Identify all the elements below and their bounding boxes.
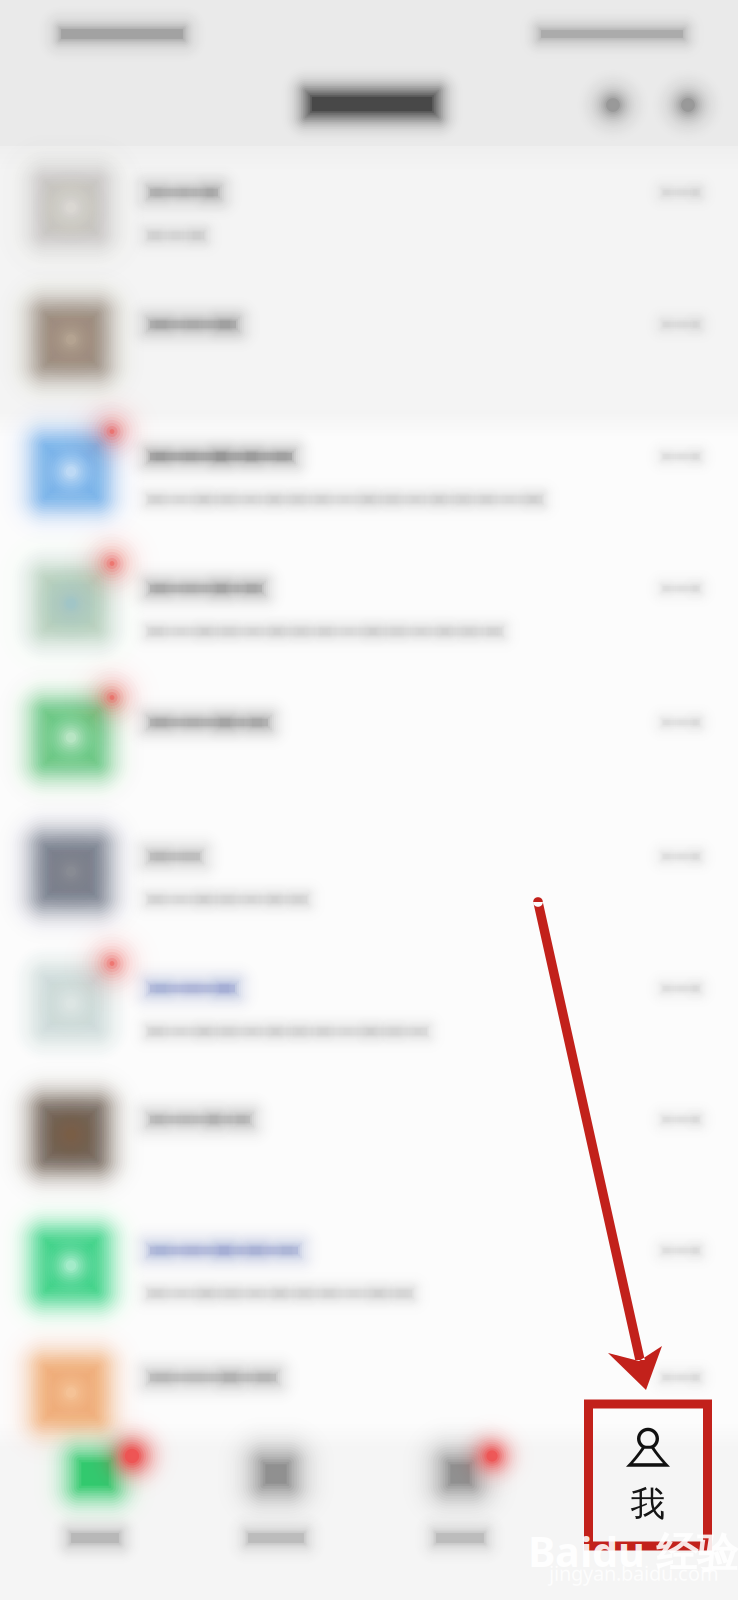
button[interactable] [368,1418,552,1600]
button[interactable]: 我 [568,1405,728,1545]
button[interactable] [0,273,738,404]
staticText: jingyan.baidu.com [549,1560,719,1586]
button[interactable] [0,1418,184,1600]
button[interactable] [0,1199,738,1330]
button[interactable] [0,537,738,668]
button[interactable] [0,405,738,536]
button[interactable]: Search [575,67,651,143]
button[interactable] [0,937,738,1068]
button[interactable]: Add [650,67,726,143]
button[interactable] [0,1326,738,1457]
button[interactable] [0,141,738,272]
staticText: 我 [630,1483,665,1525]
button[interactable] [0,1068,738,1199]
button[interactable] [0,671,738,802]
button[interactable] [184,1418,368,1600]
button[interactable] [0,805,738,936]
staticText: Baidu 经验 [528,1523,738,1578]
